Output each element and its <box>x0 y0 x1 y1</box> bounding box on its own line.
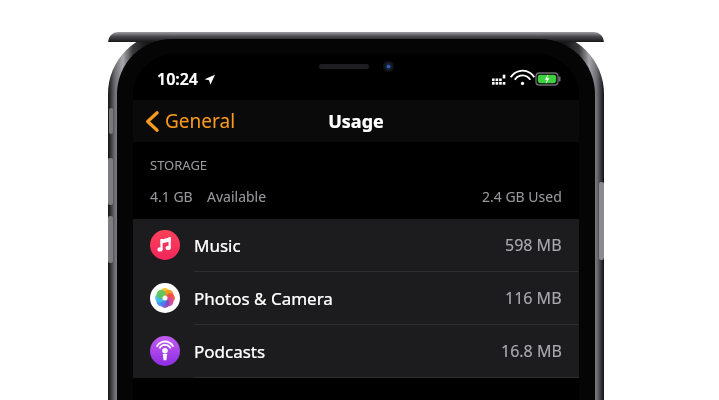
button[interactable]: Music <box>133 219 579 272</box>
button[interactable]: General <box>133 104 244 138</box>
button[interactable]: Photos & Camera <box>133 272 579 325</box>
staticText: 598 MB <box>505 234 562 256</box>
staticText: 10:24 <box>157 68 199 90</box>
staticText: General <box>165 108 236 134</box>
staticText: Available <box>207 187 267 206</box>
staticText: Usage <box>328 109 384 134</box>
button[interactable]: Podcasts <box>133 325 579 378</box>
staticText: Music <box>194 234 241 257</box>
staticText: Photos & Camera <box>194 287 333 310</box>
staticText: 4.1 GB <box>150 187 193 206</box>
staticText: 116 MB <box>505 287 562 309</box>
staticText: Podcasts <box>194 340 266 363</box>
staticText: 16.8 MB <box>501 340 562 362</box>
staticText: 2.4 GB Used <box>482 187 562 206</box>
staticText: STORAGE <box>150 156 208 174</box>
